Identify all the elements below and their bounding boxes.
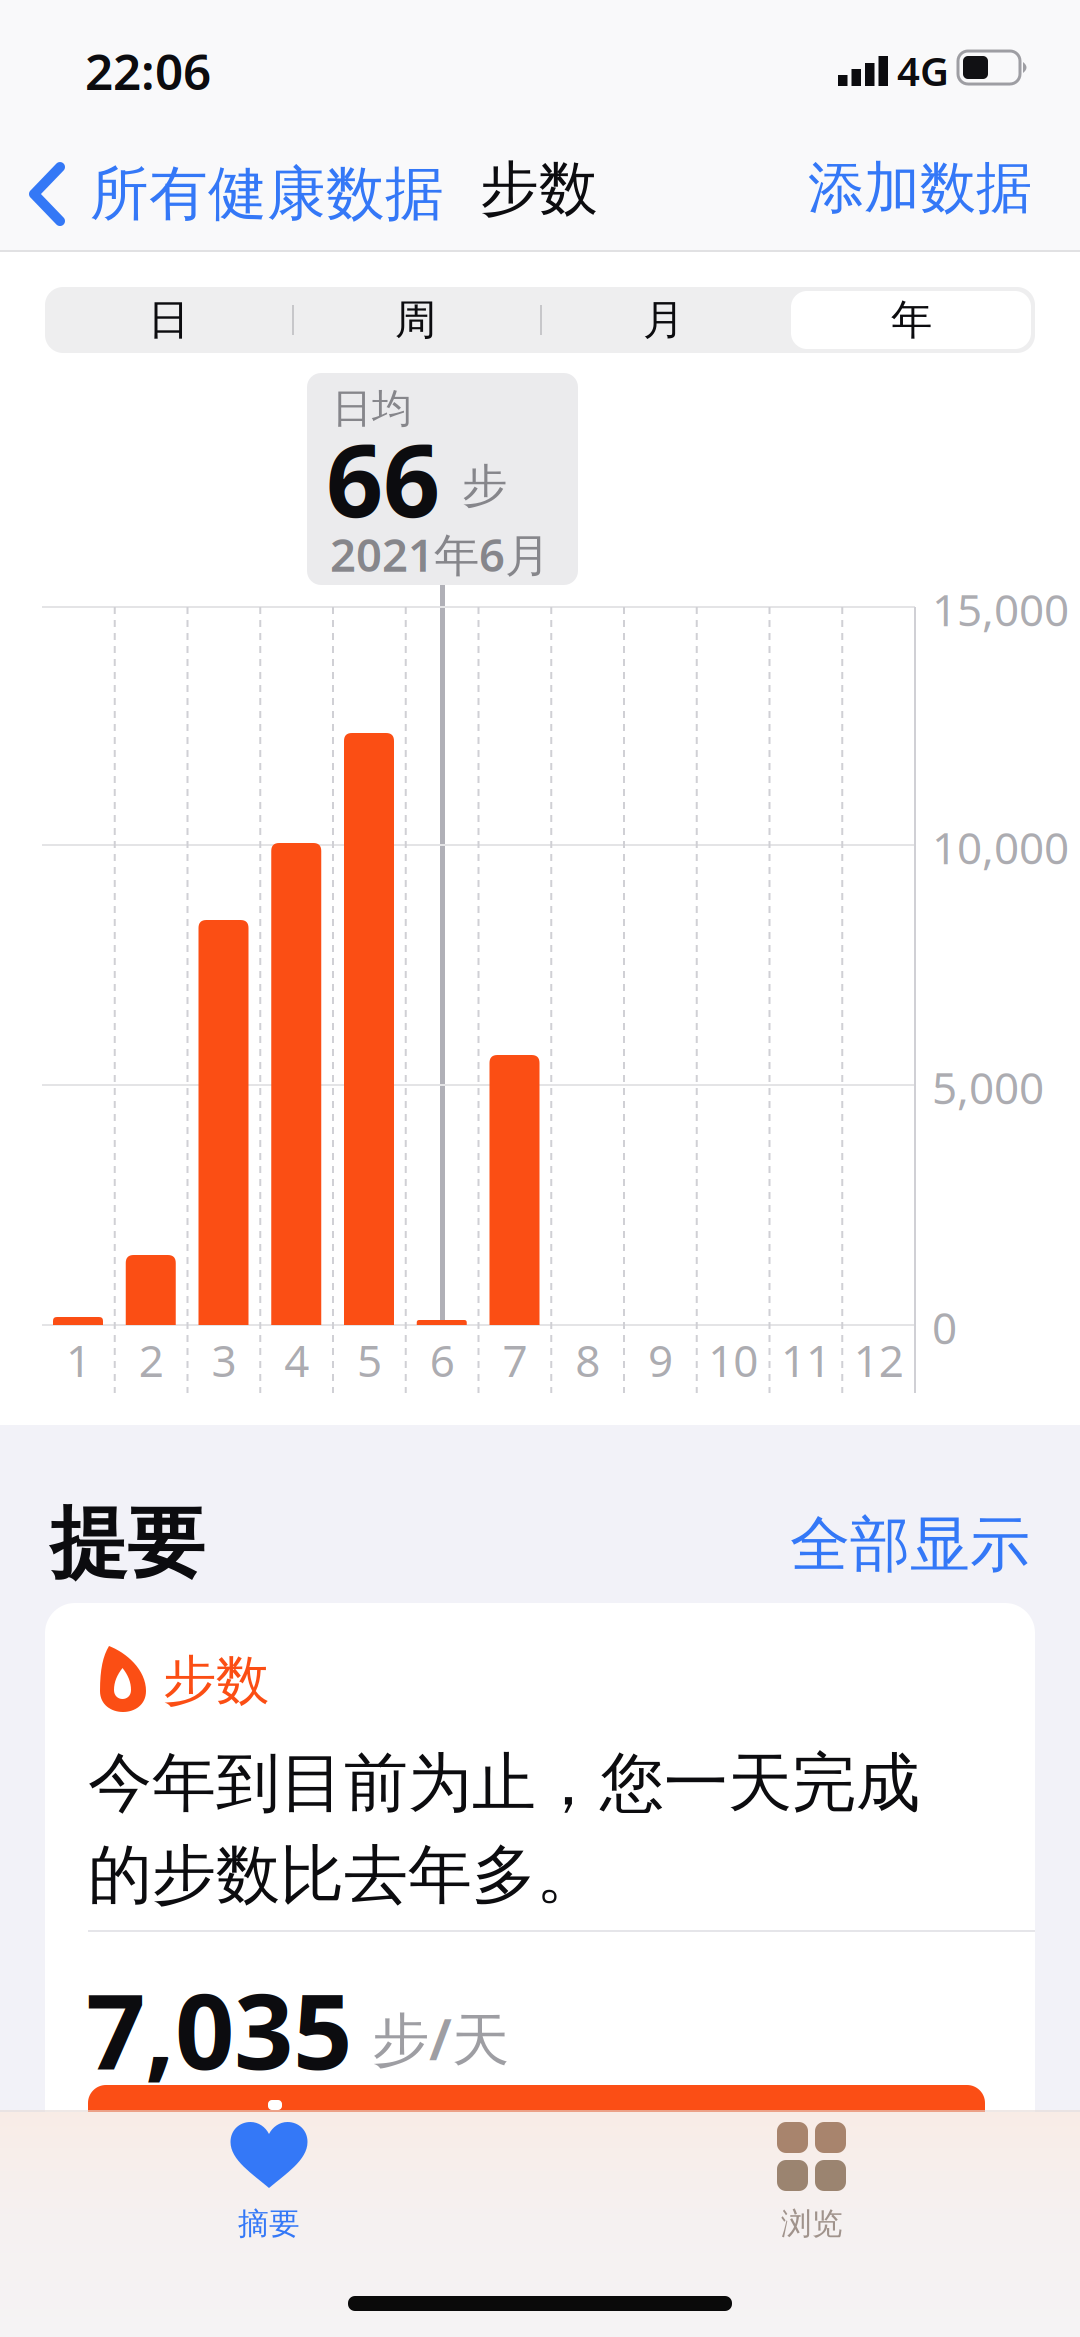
button[interactable]: 查看所有步数数据 xyxy=(88,2085,985,2185)
staticText: 日均 xyxy=(332,384,412,433)
staticText: 步/天 xyxy=(372,2000,509,2076)
staticText: 的步数比去年多。 xyxy=(88,1836,600,1915)
staticText: 11 xyxy=(781,1331,831,1389)
staticText: 22:06 xyxy=(85,38,211,103)
staticText: 4 xyxy=(284,1331,309,1389)
staticText: 0 xyxy=(932,1298,957,1356)
button[interactable]: 添加数据 xyxy=(712,153,1032,223)
staticText: 10 xyxy=(708,1331,758,1389)
staticText: 步数 xyxy=(480,153,598,225)
staticText: 全部显示 xyxy=(790,1508,1030,1582)
button[interactable]: 所有健康数据 xyxy=(28,158,444,230)
staticText: 7 xyxy=(502,1331,527,1389)
staticText: 5 xyxy=(357,1331,382,1389)
staticText: 摘要 xyxy=(238,2205,300,2243)
staticText: 10,000 xyxy=(932,818,1069,876)
staticText: 15,000 xyxy=(932,580,1069,638)
staticText: 12 xyxy=(854,1331,904,1389)
button[interactable]: 日 xyxy=(45,287,292,353)
button[interactable]: 年 xyxy=(788,287,1035,353)
staticText: 所有健康数据 xyxy=(90,158,444,230)
staticText: 步数 xyxy=(163,1648,269,1713)
button[interactable]: 周 xyxy=(292,287,539,353)
staticText: 浏览 xyxy=(781,2205,843,2243)
staticText: 月 xyxy=(643,295,684,345)
staticText: 日 xyxy=(148,295,189,345)
button[interactable]: 月 xyxy=(540,287,787,353)
button[interactable]: 浏览 xyxy=(682,2122,942,2292)
staticText: 提要 xyxy=(50,1496,204,1591)
staticText: 9 xyxy=(648,1331,673,1389)
staticText: 7,035 xyxy=(86,1960,352,2098)
staticText: 66 xyxy=(326,412,440,545)
staticText: 今年到目前为止，您一天完成 xyxy=(88,1744,920,1823)
button[interactable]: 全部显示 xyxy=(790,1508,1030,1582)
staticText: 添加数据 xyxy=(808,154,1032,222)
staticText: 4G xyxy=(897,44,949,97)
staticText: 8 xyxy=(575,1331,600,1389)
staticText: 2 xyxy=(139,1331,164,1389)
staticText: 5,000 xyxy=(932,1058,1044,1116)
staticText: 2021年6月 xyxy=(330,524,550,584)
button[interactable]: 摘要 xyxy=(139,2122,399,2292)
staticText: 6 xyxy=(430,1331,455,1389)
staticText: 周 xyxy=(395,295,436,345)
staticText: 3 xyxy=(211,1331,236,1389)
staticText: 年 xyxy=(891,295,932,345)
staticText: 1 xyxy=(66,1331,91,1389)
staticText: 步 xyxy=(462,458,507,514)
